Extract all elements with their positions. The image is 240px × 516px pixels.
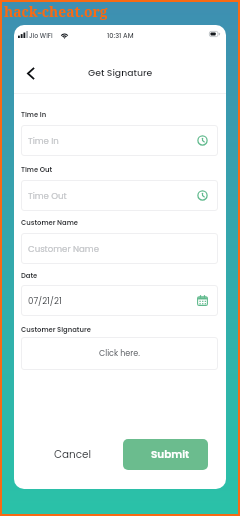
staticText: Customer Name [21, 218, 78, 228]
staticText: Cancel [54, 447, 92, 462]
staticText: Time Out [21, 165, 53, 175]
staticText: Customer Signature [21, 325, 91, 335]
staticText: 07/21/21 [28, 295, 62, 307]
staticText: Time In [21, 110, 47, 120]
button[interactable]: Click here. [21, 337, 218, 370]
button[interactable]: Time Out [21, 180, 218, 211]
staticText: Time In [28, 135, 59, 147]
staticText: Click here. [99, 348, 140, 359]
staticText: 10:31 AM [107, 31, 134, 40]
button[interactable]: Customer Name [21, 233, 218, 264]
staticText: Date [21, 271, 38, 281]
button[interactable]: Cancel [30, 439, 115, 470]
button[interactable]: Submit [123, 439, 208, 470]
staticText: Time Out [28, 190, 67, 202]
button[interactable]: 07/21/21 [21, 285, 218, 316]
staticText: hack-cheat.org [4, 2, 108, 21]
staticText: Customer Name [28, 243, 99, 255]
staticText: Jio WiFi [29, 31, 53, 40]
button[interactable]: Back [20, 60, 42, 86]
staticText: Submit [151, 447, 190, 462]
staticText: Get Signature [88, 66, 153, 79]
button[interactable]: Time In [21, 125, 218, 156]
